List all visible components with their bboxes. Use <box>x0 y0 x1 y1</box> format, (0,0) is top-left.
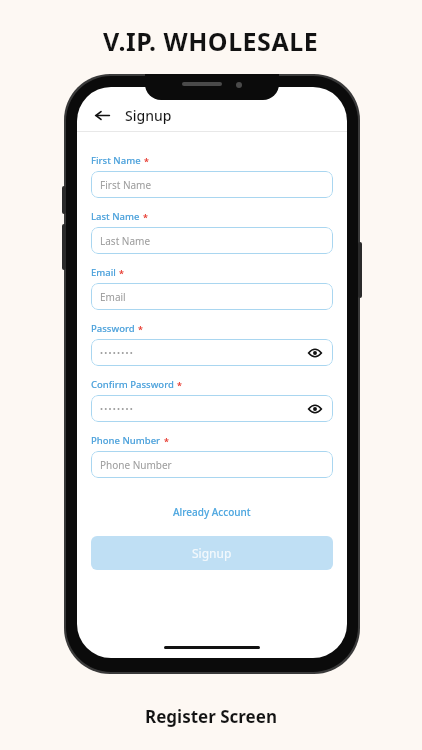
button[interactable]: Show password <box>91 395 333 422</box>
staticText: Signup <box>192 545 232 561</box>
button[interactable]: Show password <box>306 344 324 362</box>
staticText: Phone Number <box>100 458 172 472</box>
staticText: Already Account <box>173 505 251 519</box>
button[interactable]: Email <box>91 283 333 310</box>
staticText: Register Screen <box>145 705 277 728</box>
button[interactable]: Phone Number <box>91 451 333 478</box>
button[interactable]: First Name <box>91 171 333 198</box>
button[interactable]: Last Name <box>91 227 333 254</box>
staticText: Confirm Password <box>91 378 174 391</box>
staticText: * <box>144 155 149 167</box>
staticText: * <box>119 267 124 279</box>
button[interactable]: Already Account <box>167 502 257 522</box>
staticText: Email <box>91 266 116 279</box>
staticText: Last Name <box>100 234 151 248</box>
button[interactable]: Show password <box>306 400 324 418</box>
staticText: First Name <box>91 154 141 167</box>
staticText: * <box>164 435 169 447</box>
staticText: Email <box>100 290 126 304</box>
staticText: First Name <box>100 178 152 192</box>
staticText: Signup <box>125 106 172 125</box>
staticText: * <box>177 379 182 391</box>
staticText: Phone Number <box>91 434 161 447</box>
button[interactable]: Signup <box>91 536 333 570</box>
staticText: Password <box>91 322 135 335</box>
staticText: * <box>143 211 148 223</box>
button[interactable]: Show password <box>91 339 333 366</box>
staticText: * <box>138 323 143 335</box>
staticText: V.IP. WHOLESALE <box>103 24 319 58</box>
staticText: Last Name <box>91 210 140 223</box>
button[interactable]: Back <box>89 102 115 128</box>
